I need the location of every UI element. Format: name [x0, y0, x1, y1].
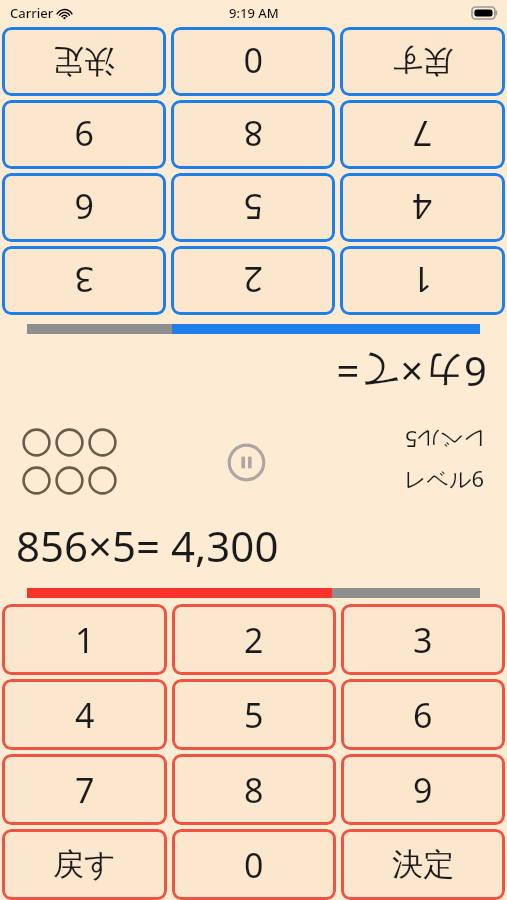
button[interactable]: 4 [2, 679, 167, 750]
button[interactable]: 戻す [2, 829, 167, 900]
button[interactable]: 6 [2, 173, 166, 242]
button[interactable]: 1 [2, 604, 167, 675]
staticText: 9 [74, 111, 94, 157]
button[interactable]: 5 [172, 679, 336, 750]
staticText: 0 [243, 38, 263, 84]
button[interactable]: 5 [171, 173, 335, 242]
button[interactable]: 2 [171, 246, 335, 315]
button[interactable]: 戻す [340, 27, 505, 96]
staticText: 6 [413, 692, 433, 738]
staticText: レベル6 [404, 463, 485, 493]
staticText: 8 [244, 767, 264, 813]
staticText: 1 [412, 257, 432, 303]
button[interactable]: 2 [172, 604, 336, 675]
button[interactable]: 決定 [2, 27, 166, 96]
button[interactable]: Pause [227, 443, 266, 482]
staticText: 4 [412, 184, 432, 230]
button[interactable]: 1 [340, 246, 505, 315]
staticText: 7 [412, 111, 432, 157]
button[interactable]: 9 [2, 100, 166, 169]
button[interactable]: 9 [341, 754, 505, 825]
staticText: 決定 [53, 42, 115, 81]
staticText: 戻す [391, 42, 454, 81]
button[interactable]: 8 [172, 754, 336, 825]
staticText: Carrier [10, 4, 54, 22]
button[interactable]: 6 [341, 679, 505, 750]
staticText: 戻す [53, 845, 116, 884]
button[interactable]: 4 [340, 173, 505, 242]
staticText: レベル5 [404, 425, 485, 455]
button[interactable]: 決定 [341, 829, 505, 900]
staticText: 2 [243, 257, 263, 303]
staticText: 6カ×て= [336, 345, 487, 400]
staticText: 3 [74, 257, 94, 303]
staticText: 3 [413, 617, 433, 663]
staticText: 9 [413, 767, 433, 813]
staticText: 0 [244, 842, 264, 888]
staticText: 9:19 AM [229, 4, 279, 22]
staticText: 8 [243, 111, 263, 157]
staticText: 7 [75, 767, 95, 813]
staticText: 5 [243, 184, 263, 230]
button[interactable]: 0 [172, 829, 336, 900]
staticText: 856×5= 4,300 [16, 517, 279, 574]
staticText: 2 [244, 617, 264, 663]
button[interactable]: 8 [171, 100, 335, 169]
staticText: 6 [74, 184, 94, 230]
button[interactable]: 7 [340, 100, 505, 169]
staticText: 4 [75, 692, 95, 738]
button[interactable]: 7 [2, 754, 167, 825]
staticText: 決定 [392, 845, 454, 884]
button[interactable]: 3 [2, 246, 166, 315]
staticText: 5 [244, 692, 264, 738]
staticText: 1 [75, 617, 95, 663]
button[interactable]: 0 [171, 27, 335, 96]
button[interactable]: 3 [341, 604, 505, 675]
